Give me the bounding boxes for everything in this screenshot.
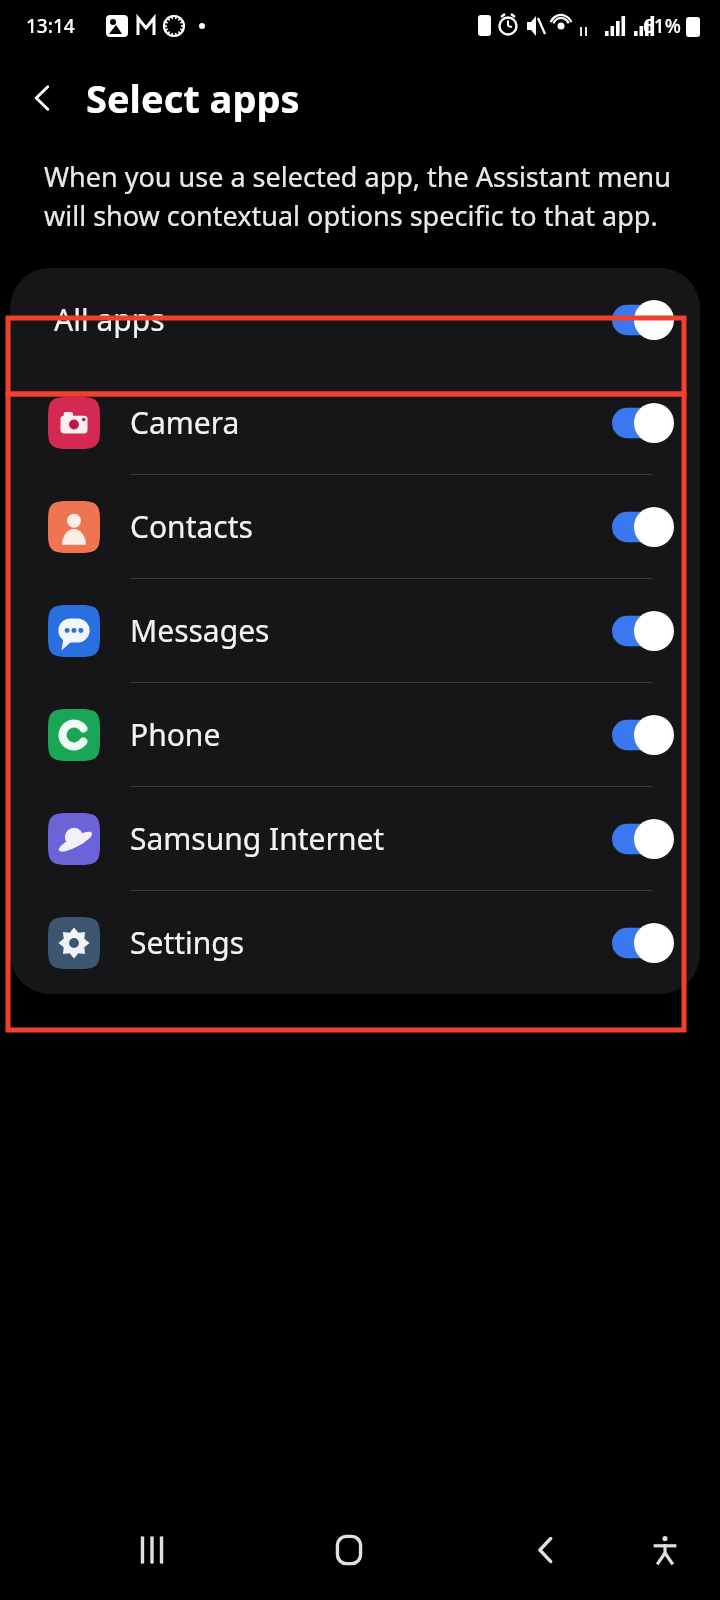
staticText: Messages [130,610,270,651]
button[interactable]: Back [0,52,86,144]
button[interactable]: Back [506,1510,586,1590]
staticText: When you use a selected app, the Assista… [44,158,671,234]
button[interactable]: Samsung Internet [10,787,700,890]
button[interactable]: Phone [10,683,700,786]
button[interactable]: Recent apps [112,1510,192,1590]
staticText: All apps [54,299,165,340]
staticText: Settings [130,922,245,963]
button[interactable]: Camera [10,371,700,474]
button[interactable]: Home [309,1510,389,1590]
staticText: 13:14 [26,13,75,39]
staticText: Select apps [86,72,300,124]
button[interactable]: All apps [10,268,700,371]
staticText: Phone [130,714,221,755]
button[interactable]: Accessibility [630,1515,700,1585]
staticText: 61% [643,13,681,39]
staticText: Samsung Internet [130,818,385,859]
button[interactable]: Settings [10,891,700,994]
button[interactable]: Contacts [10,475,700,578]
staticText: Contacts [130,506,253,547]
button[interactable]: Messages [10,579,700,682]
staticText: Camera [130,402,240,443]
